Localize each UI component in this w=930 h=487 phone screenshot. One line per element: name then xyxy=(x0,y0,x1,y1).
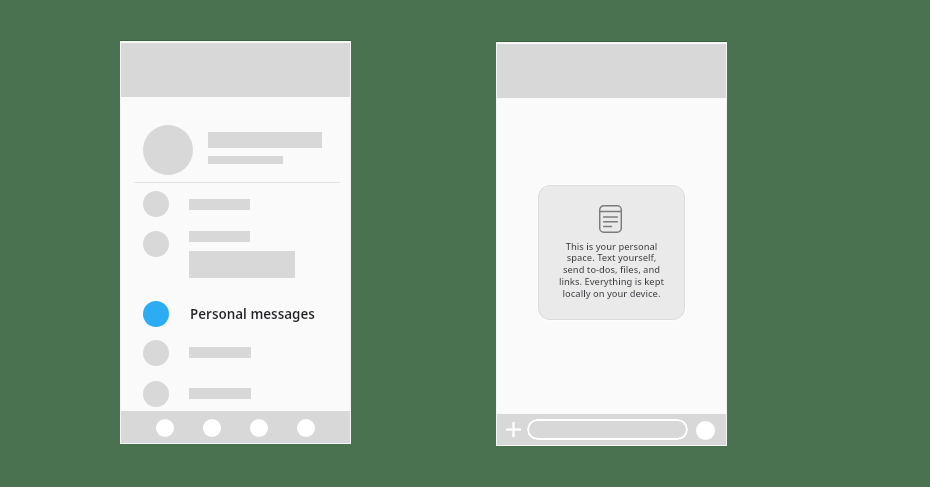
button[interactable]: Tab 3 xyxy=(250,419,268,437)
button[interactable]: Add attachment xyxy=(501,417,525,441)
button[interactable] xyxy=(121,231,350,278)
button[interactable]: This is your personal space. Text yourse… xyxy=(538,185,685,320)
button[interactable] xyxy=(121,191,350,219)
button[interactable]: Voice message xyxy=(696,421,715,440)
staticText: This is your personal space. Text yourse… xyxy=(558,240,665,300)
button[interactable]: Message input field xyxy=(527,419,688,440)
button[interactable]: Tab 4 xyxy=(297,419,315,437)
button[interactable]: Personal messages xyxy=(121,296,350,332)
staticText: Personal messages xyxy=(190,305,315,323)
button[interactable] xyxy=(121,125,350,175)
button[interactable] xyxy=(121,381,350,409)
button[interactable]: Tab 2 xyxy=(203,419,221,437)
button[interactable] xyxy=(121,340,350,368)
button[interactable]: Tab 1 xyxy=(156,419,174,437)
